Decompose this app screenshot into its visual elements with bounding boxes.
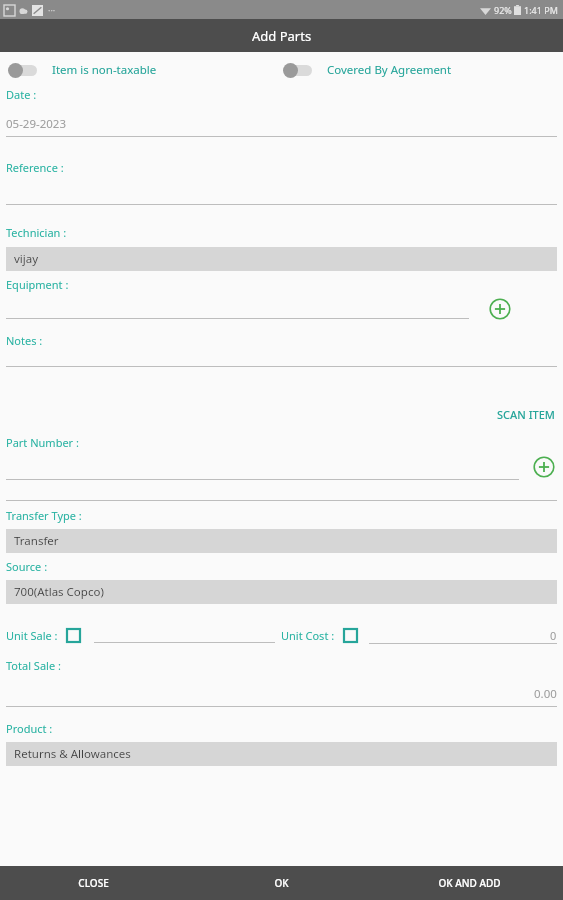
staticText: OK AND ADD — [438, 876, 501, 890]
button[interactable]: 700(Atlas Copco) — [6, 580, 557, 604]
staticText: Date : — [6, 87, 37, 102]
button[interactable]: vijay — [6, 247, 557, 271]
staticText: ··· — [48, 4, 56, 16]
button[interactable] — [94, 628, 275, 643]
staticText: Reference : — [6, 160, 64, 175]
button[interactable]: Unit Cost checkbox — [341, 626, 359, 644]
staticText: Transfer Type : — [6, 508, 82, 523]
staticText: Unit Cost : — [281, 628, 335, 643]
staticText: Item is non-taxable — [52, 62, 157, 78]
button[interactable]: Unit Sale checkbox — [64, 626, 82, 644]
staticText: Add Parts — [252, 27, 312, 45]
staticText: Unit Sale : — [6, 628, 58, 643]
button[interactable]: OK AND ADD — [375, 866, 563, 900]
button[interactable]: Item is non-taxable toggle — [6, 60, 281, 80]
button[interactable]: Add part number — [531, 454, 557, 480]
staticText: 05-29-2023 — [6, 116, 67, 132]
staticText: Notes : — [6, 333, 43, 348]
button[interactable]: Item is non-taxable toggle — [6, 60, 40, 80]
staticText: SCAN ITEM — [497, 407, 555, 422]
staticText: Transfer — [14, 533, 59, 549]
button[interactable]: Add equipment — [487, 296, 513, 322]
staticText: 0.00 — [534, 686, 557, 702]
button[interactable]: Covered By Agreement toggle — [281, 60, 315, 80]
staticText: 0 — [550, 628, 557, 643]
staticText: vijay — [14, 251, 39, 267]
staticText: Source : — [6, 559, 48, 574]
staticText: Covered By Agreement — [327, 62, 452, 78]
button[interactable]: OK — [187, 866, 375, 900]
staticText: Technician : — [6, 225, 67, 240]
staticText: Returns & Allowances — [14, 746, 131, 762]
button[interactable]: Transfer — [6, 529, 557, 553]
staticText: 92% — [494, 4, 512, 16]
button[interactable]: 05-29-2023 — [6, 116, 557, 132]
button[interactable]: SCAN ITEM — [495, 406, 557, 423]
staticText: 700(Atlas Copco) — [14, 584, 104, 600]
button[interactable]: CLOSE — [0, 866, 187, 900]
button[interactable]: 0 — [369, 627, 557, 644]
staticText: 1:41 PM — [524, 4, 558, 16]
staticText: Equipment : — [6, 277, 69, 292]
staticText: OK — [274, 876, 289, 890]
button[interactable]: Returns & Allowances — [6, 742, 557, 766]
button[interactable]: Covered By Agreement toggle — [281, 60, 557, 80]
staticText: Product : — [6, 721, 53, 736]
staticText: CLOSE — [78, 876, 109, 890]
staticText: Part Number : — [6, 435, 79, 450]
staticText: Total Sale : — [6, 658, 61, 673]
button[interactable]: 0.00 — [6, 686, 557, 702]
